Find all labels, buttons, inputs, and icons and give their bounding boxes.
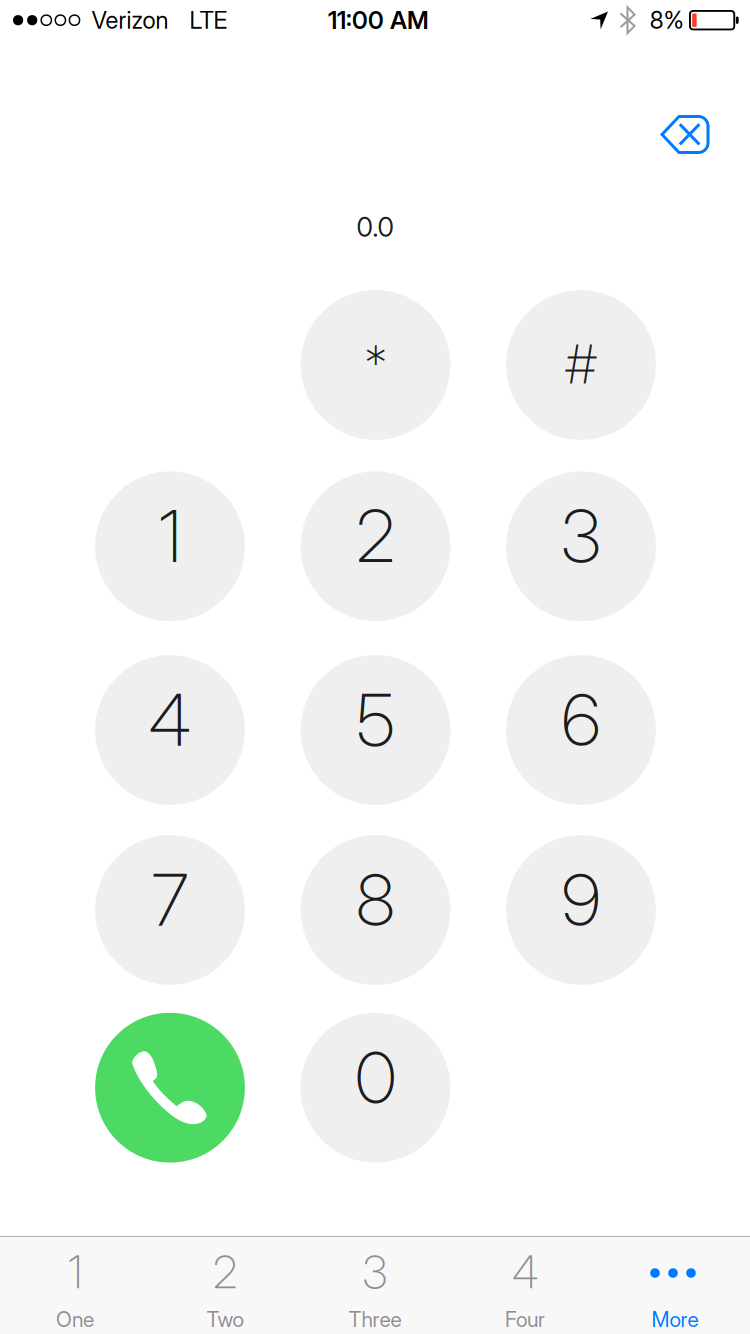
button[interactable]: Delete [635, 89, 735, 179]
staticText: 1 [158, 492, 181, 579]
staticText: Two [206, 1307, 243, 1332]
button[interactable]: # [506, 290, 656, 440]
staticText: 0.0 [356, 211, 393, 243]
staticText: Three [348, 1307, 401, 1332]
button[interactable]: 4 [95, 655, 245, 805]
staticText: 4 [512, 1245, 538, 1299]
staticText: * [365, 334, 386, 392]
button[interactable]: 8 [301, 835, 450, 985]
staticText: 1 [68, 1245, 82, 1299]
staticText: 6 [561, 676, 600, 763]
staticText: 2 [356, 492, 395, 579]
button[interactable]: More [600, 1236, 750, 1334]
staticText: 9 [561, 856, 600, 943]
staticText: 0 [355, 1034, 396, 1121]
button[interactable]: 3 [300, 1236, 450, 1334]
button[interactable]: 7 [95, 835, 245, 985]
staticText: 8% [650, 6, 684, 34]
staticText: 11:00 AM [328, 5, 429, 35]
button[interactable]: 4 [450, 1236, 600, 1334]
button[interactable]: 6 [506, 655, 656, 805]
staticText: 3 [362, 1245, 387, 1299]
staticText: LTE [189, 6, 227, 34]
button[interactable]: 5 [301, 655, 450, 805]
staticText: 3 [561, 492, 601, 579]
button[interactable]: 3 [506, 471, 656, 621]
button[interactable]: 0 [301, 1013, 450, 1163]
button[interactable]: 9 [506, 835, 656, 985]
staticText: One [56, 1307, 94, 1332]
button[interactable]: 2 [301, 471, 450, 621]
staticText: # [565, 332, 596, 396]
button[interactable]: * [301, 290, 450, 440]
button[interactable]: 1 [0, 1236, 150, 1334]
staticText: Verizon [91, 6, 168, 34]
button[interactable]: 2 [150, 1236, 300, 1334]
staticText: 7 [151, 856, 188, 943]
button[interactable]: 1 [95, 471, 245, 621]
staticText: More [651, 1307, 698, 1332]
staticText: 2 [213, 1245, 237, 1299]
button[interactable]: Call [95, 1013, 245, 1163]
staticText: 5 [356, 676, 394, 763]
staticText: 8 [356, 856, 395, 943]
staticText: Four [505, 1307, 545, 1332]
staticText: 4 [148, 676, 191, 763]
